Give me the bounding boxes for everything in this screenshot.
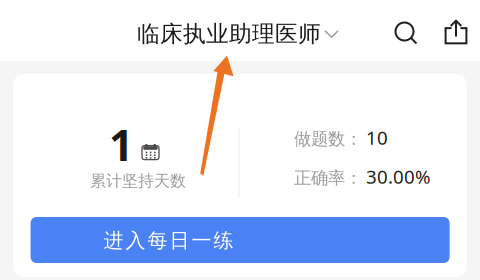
staticText: 累计坚持天数	[90, 171, 186, 191]
button[interactable]: Share	[436, 12, 476, 52]
staticText: 正确率：	[294, 167, 362, 188]
staticText: 30.00%	[366, 164, 431, 189]
staticText: 10	[366, 125, 388, 150]
button[interactable]: 进入每日一练	[31, 217, 450, 263]
staticText: 做题数：	[294, 128, 362, 149]
staticText: 1	[109, 116, 133, 173]
staticText: 临床执业助理医师	[137, 20, 321, 48]
button[interactable]: Search	[386, 13, 426, 53]
staticText: 进入每日一练	[104, 228, 234, 253]
button[interactable]: 临床执业助理医师	[131, 13, 345, 55]
